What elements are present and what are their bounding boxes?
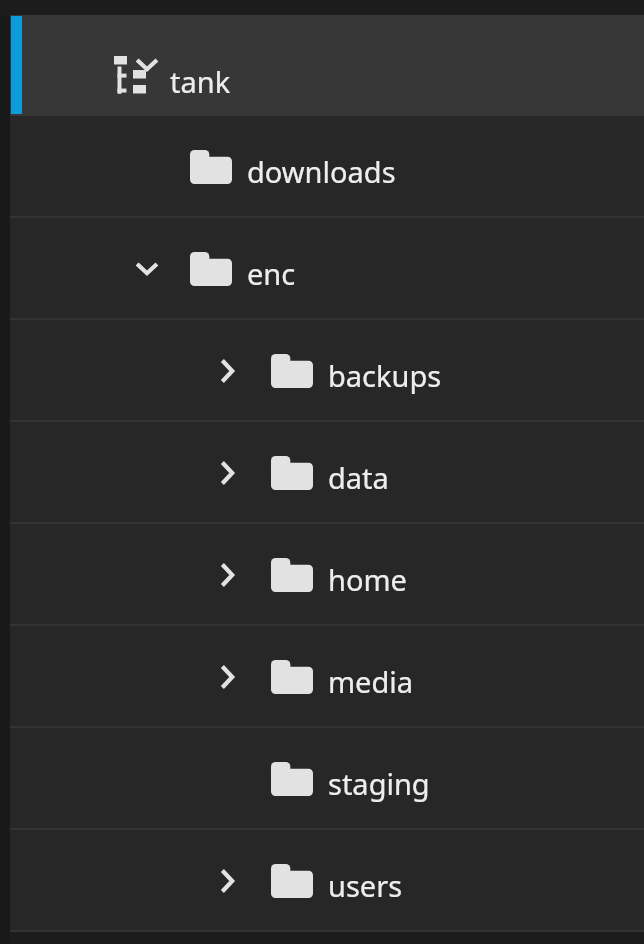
- button[interactable]: Expand media: [0, 626, 644, 728]
- button[interactable]: Collapse enc: [124, 246, 170, 292]
- staticText: users: [328, 866, 403, 905]
- staticText: tank: [170, 62, 231, 101]
- staticText: media: [328, 662, 414, 701]
- staticText: backups: [328, 356, 442, 395]
- button[interactable]: staging: [0, 728, 644, 830]
- button[interactable]: Expand data: [0, 422, 644, 524]
- staticText: home: [328, 560, 407, 599]
- staticText: downloads: [247, 152, 396, 191]
- staticText: staging: [328, 764, 430, 803]
- button[interactable]: Expand home: [205, 552, 251, 598]
- button[interactable]: Collapse enc: [0, 218, 644, 320]
- button[interactable]: Expand backups: [205, 348, 251, 394]
- button[interactable]: Expand data: [205, 450, 251, 496]
- button[interactable]: Expand home: [0, 524, 644, 626]
- button[interactable]: Expand users: [205, 858, 251, 904]
- button[interactable]: Collapse tank: [124, 42, 170, 88]
- button[interactable]: Expand users: [0, 830, 644, 932]
- button[interactable]: Expand media: [205, 654, 251, 700]
- button[interactable]: Collapse tank: [0, 15, 644, 116]
- staticText: enc: [247, 254, 296, 293]
- button[interactable]: downloads: [0, 116, 644, 218]
- button[interactable]: Expand backups: [0, 320, 644, 422]
- staticText: data: [328, 458, 389, 497]
